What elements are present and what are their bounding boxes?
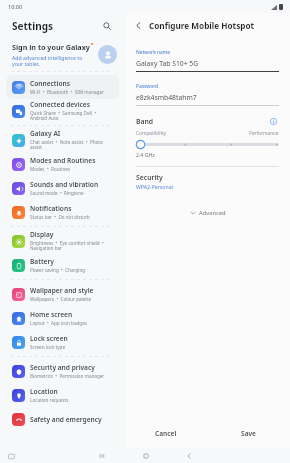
- staticText: Band: [136, 117, 268, 126]
- button[interactable]: Lock screen: [6, 330, 119, 354]
- staticText: Location: [30, 387, 58, 396]
- staticText: Brightness • Eye comfort shield • Naviga…: [30, 240, 115, 252]
- staticText: Galaxy AI: [30, 129, 61, 138]
- staticText: Save: [241, 429, 256, 438]
- staticText: Connected devices: [30, 100, 90, 109]
- button[interactable]: Battery: [6, 253, 119, 277]
- button[interactable]: Galaxy AI: [6, 128, 119, 152]
- staticText: Battery: [30, 257, 54, 266]
- staticText: Configure Mobile Hotspot: [149, 20, 255, 31]
- staticText: Cancel: [155, 429, 177, 438]
- button[interactable]: Home: [139, 449, 152, 462]
- staticText: Quick Share • Samsung DeX • Android Auto: [30, 110, 115, 122]
- button[interactable]: Sounds and vibration: [6, 176, 119, 200]
- staticText: Screen lock type: [30, 344, 65, 350]
- staticText: Performance: [249, 130, 279, 137]
- staticText: Display: [30, 230, 54, 239]
- button[interactable]: Display: [6, 229, 119, 253]
- staticText: Status bar • Do not disturb: [30, 214, 90, 220]
- staticText: WPA2-Personal: [136, 183, 173, 190]
- button[interactable]: Security: [136, 173, 279, 190]
- staticText: Modes and Routines: [30, 156, 96, 165]
- button[interactable]: Save: [207, 422, 290, 444]
- staticText: Galaxy Tab S10+ 5G: [136, 59, 199, 68]
- button[interactable]: Back: [182, 449, 195, 462]
- staticText: 10:00: [8, 3, 23, 10]
- button[interactable]: Connections: [6, 75, 119, 99]
- button[interactable]: Band information: [268, 116, 279, 127]
- staticText: Connections: [30, 79, 70, 88]
- button[interactable]: Location: [6, 383, 119, 407]
- staticText: Add advanced intelligence to your tablet…: [12, 54, 94, 68]
- staticText: Password: [136, 83, 159, 90]
- staticText: Notifications: [30, 204, 72, 213]
- staticText: Sign in to your Galaxy: [12, 42, 90, 52]
- staticText: Advanced: [199, 209, 226, 217]
- staticText: Wallpaper and style: [30, 286, 94, 295]
- button[interactable]: Galaxy Tab S10+ 5G: [136, 59, 279, 72]
- button[interactable]: Home screen: [6, 306, 119, 330]
- button[interactable]: Security and privacy: [6, 359, 119, 383]
- staticText: 2.4 GHz: [136, 151, 155, 158]
- button[interactable]: Recents: [95, 449, 108, 462]
- staticText: Compatibility: [136, 130, 166, 137]
- button[interactable]: Cancel: [125, 422, 207, 444]
- staticText: Modes • Routines: [30, 166, 71, 172]
- staticText: e8zk4smb48tahm7: [136, 93, 197, 102]
- button[interactable]: Safety and emergency: [6, 407, 119, 431]
- button[interactable]: Keyboard: [6, 451, 16, 461]
- staticText: Biometrics • Permission manager: [30, 373, 105, 379]
- staticText: Network name: [136, 49, 171, 56]
- button[interactable]: Modes and Routines: [6, 152, 119, 176]
- staticText: Power saving • Charging: [30, 267, 86, 273]
- button[interactable]: Wallpaper and style: [6, 282, 119, 306]
- button[interactable]: Notifications: [6, 200, 119, 224]
- button[interactable]: Advanced: [125, 206, 290, 220]
- staticText: Lock screen: [30, 334, 68, 343]
- button[interactable]: Band slider: [136, 140, 279, 149]
- staticText: Layout • App icon badges: [30, 320, 87, 326]
- staticText: Sounds and vibration: [30, 180, 99, 189]
- button[interactable]: e8zk4smb48tahm7: [136, 93, 279, 106]
- staticText: Home screen: [30, 310, 73, 319]
- staticText: Sound mode • Ringtone: [30, 190, 84, 196]
- button[interactable]: Sign in to your Galaxy: [0, 38, 125, 71]
- staticText: Settings: [12, 19, 53, 33]
- staticText: Chat assist • Note assist • Photo assist: [30, 139, 115, 151]
- staticText: Security and privacy: [30, 363, 95, 372]
- staticText: Safety and emergency: [30, 415, 102, 424]
- button[interactable]: Search: [99, 18, 115, 34]
- staticText: Security: [136, 173, 163, 182]
- staticText: Location requests: [30, 397, 69, 403]
- button[interactable]: Back: [131, 18, 146, 33]
- staticText: Wi-Fi • Bluetooth • SIM manager: [30, 89, 104, 95]
- button[interactable]: Connected devices: [6, 99, 119, 123]
- staticText: Wallpapers • Colour palette: [30, 296, 92, 302]
